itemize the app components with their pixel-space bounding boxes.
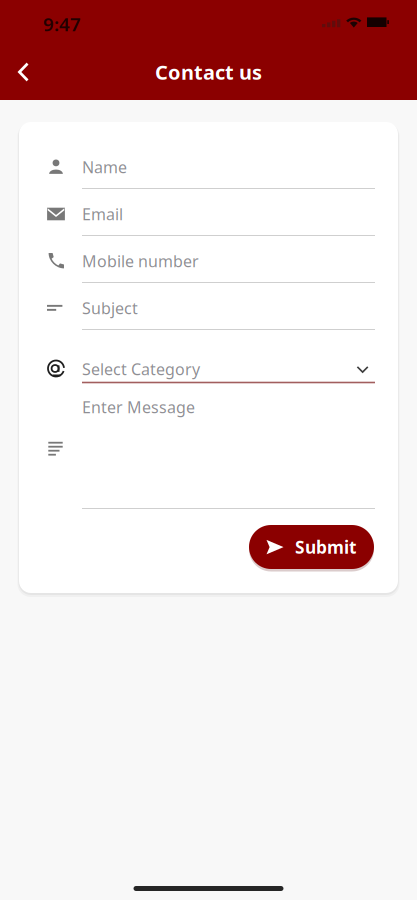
button[interactable]: Submit — [249, 525, 374, 569]
button[interactable]: Name — [19, 148, 398, 189]
button[interactable]: Mobile number — [19, 242, 398, 283]
staticText: Subject — [82, 297, 138, 319]
staticText: Contact us — [155, 59, 262, 85]
button[interactable]: Email — [19, 195, 398, 236]
button[interactable]: Enter Message — [19, 385, 398, 505]
staticText: Enter Message — [82, 396, 195, 418]
staticText: Submit — [295, 535, 357, 558]
staticText: 9:47 — [43, 12, 81, 36]
button[interactable]: Back — [5, 49, 43, 95]
staticText: Mobile number — [82, 250, 199, 272]
staticText: Email — [82, 203, 123, 225]
button[interactable]: Subject — [19, 289, 398, 330]
staticText: Select Category — [82, 358, 200, 380]
button[interactable]: Select Category — [19, 350, 398, 391]
staticText: Name — [82, 156, 127, 178]
